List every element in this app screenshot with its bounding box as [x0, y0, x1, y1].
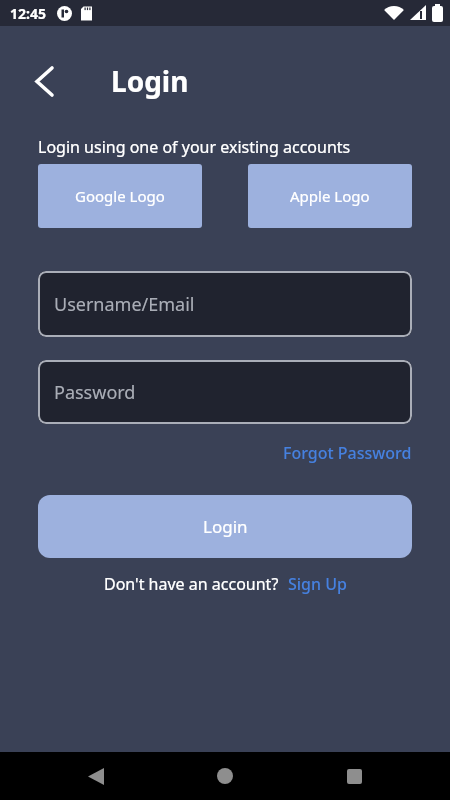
staticText: Login [203, 515, 248, 538]
button[interactable]: Sign Up [288, 573, 347, 595]
button[interactable]: Google Logo [38, 164, 202, 228]
staticText: Login using one of your existing account… [38, 136, 351, 158]
staticText: Login [111, 62, 189, 100]
button[interactable] [337, 759, 371, 793]
button[interactable]: Username/Email [38, 271, 412, 337]
staticText: Apple Logo [290, 186, 370, 206]
button[interactable]: Forgot Password [283, 442, 412, 464]
staticText: Google Logo [75, 186, 165, 206]
button[interactable]: Apple Logo [248, 164, 412, 228]
staticText: Username/Email [54, 292, 195, 317]
staticText: Password [54, 380, 136, 405]
staticText: 12:45 [10, 4, 46, 23]
button[interactable]: Login [38, 495, 412, 558]
button[interactable] [208, 759, 242, 793]
button[interactable]: Password [38, 360, 412, 424]
button[interactable] [79, 759, 113, 793]
button[interactable] [24, 61, 64, 101]
staticText: Don't have an account? [104, 573, 279, 595]
